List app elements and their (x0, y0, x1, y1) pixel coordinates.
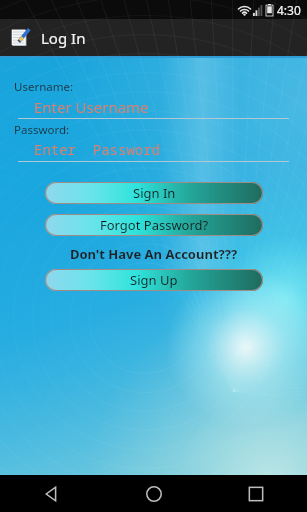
staticText: Enter Username (34, 97, 149, 117)
button[interactable]: Sign In (45, 182, 263, 204)
staticText: Forgot Password? (100, 216, 209, 234)
staticText: Sign In (133, 184, 176, 202)
staticText: Don't Have An Account??? (0, 245, 307, 263)
button[interactable]: Sign Up (45, 269, 263, 291)
button[interactable]: Back (0, 475, 103, 512)
button[interactable]: Home (103, 475, 205, 512)
staticText: 4:30 (277, 2, 301, 18)
button[interactable]: Forgot Password? (45, 214, 263, 236)
staticText: Password: (14, 122, 70, 138)
staticText: Sign Up (130, 271, 178, 289)
staticText: Username: (14, 79, 74, 95)
button[interactable]: Enter Password (18, 138, 289, 161)
button[interactable]: Enter Username (18, 95, 289, 118)
staticText: Log In (41, 28, 86, 48)
button[interactable]: Recents (205, 475, 307, 512)
staticText: Enter Password (34, 140, 160, 159)
